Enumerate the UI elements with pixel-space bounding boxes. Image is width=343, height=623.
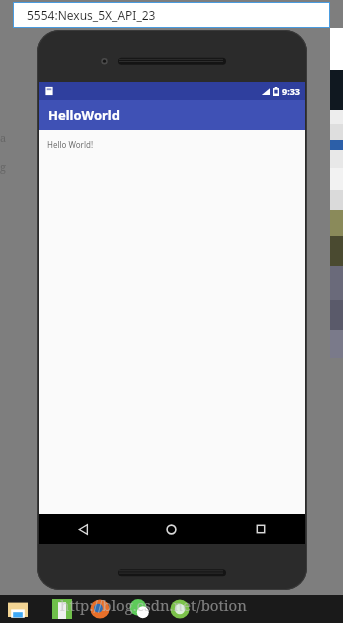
button[interactable]: Android <box>168 597 192 621</box>
button[interactable]: Back <box>39 514 127 544</box>
staticText: Hello World! <box>47 139 94 150</box>
staticText: a <box>0 130 7 145</box>
button[interactable]: Home <box>127 514 216 544</box>
button[interactable]: File Explorer <box>6 597 30 621</box>
staticText: http://blog.csdn.net/botion <box>60 595 247 615</box>
button[interactable]: Firefox <box>88 597 112 621</box>
staticText: HelloWorld <box>48 106 120 124</box>
staticText: g <box>0 159 6 174</box>
staticText: 9:33 <box>282 85 300 97</box>
button[interactable]: Recent apps <box>216 514 305 544</box>
staticText: 5554:Nexus_5X_API_23 <box>27 7 156 23</box>
button[interactable]: WeChat <box>128 597 152 621</box>
button[interactable]: HelloWorld <box>39 100 305 130</box>
button[interactable]: Android Studio <box>50 597 74 621</box>
